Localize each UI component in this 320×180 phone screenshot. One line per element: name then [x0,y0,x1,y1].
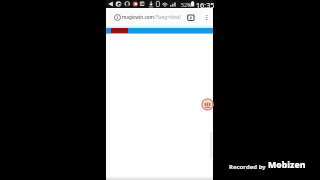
staticText: 16:35 [196,0,215,8]
staticText: Recorded by [229,163,266,171]
button[interactable]: Switch tabs [185,12,197,24]
staticText: Mobizen [268,159,306,171]
button[interactable]: Support chat [201,98,214,111]
staticText: 52% [181,1,192,8]
button[interactable]: magicwin.com [122,8,181,26]
button[interactable]: More options [201,12,212,23]
button[interactable]: Site information [112,12,122,22]
staticText: /?lang=hindi [154,14,181,20]
staticText: magicwin.com [122,14,154,20]
